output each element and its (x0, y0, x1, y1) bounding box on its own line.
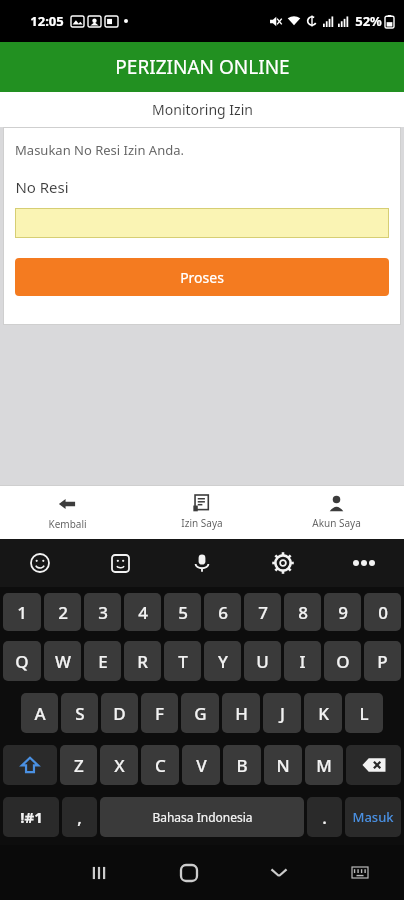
staticText: E (98, 650, 108, 673)
button[interactable]: Recents (54, 845, 144, 900)
staticText: C (155, 754, 166, 777)
button[interactable]: T (164, 641, 201, 681)
button[interactable]: N (264, 745, 302, 785)
button[interactable]: Voice input (161, 539, 242, 587)
button[interactable]: 2 (44, 593, 81, 631)
staticText: 3 (98, 601, 108, 624)
staticText: 4 (138, 601, 148, 624)
button[interactable]: H (222, 693, 260, 733)
staticText: 5 (178, 601, 188, 624)
staticText: H (235, 702, 248, 725)
button[interactable]: M (305, 745, 343, 785)
button[interactable]: R (124, 641, 161, 681)
button[interactable]: 9 (324, 593, 361, 631)
staticText: Q (15, 650, 29, 673)
button[interactable]: Bahasa Indonesia (100, 797, 304, 837)
staticText: S (75, 702, 85, 725)
staticText: L (359, 702, 369, 725)
staticText: U (256, 650, 269, 673)
button[interactable]: A (21, 693, 58, 733)
staticText: Kembali (48, 517, 87, 531)
staticText: Z (74, 754, 84, 777)
staticText: 1 (17, 601, 27, 624)
staticText: 12:05 (30, 12, 64, 30)
staticText: I (299, 650, 306, 673)
button[interactable]: B (223, 745, 261, 785)
button[interactable]: Proses (15, 258, 389, 296)
staticText: J (280, 702, 285, 725)
button[interactable]: !#1 (3, 797, 59, 837)
staticText: , (77, 806, 82, 829)
button[interactable]: More options (323, 539, 404, 587)
button[interactable]: 0 (364, 593, 401, 631)
button[interactable]: Hide keyboard (234, 845, 324, 900)
staticText: . (322, 806, 327, 829)
button[interactable]: 6 (204, 593, 241, 631)
staticText: N (276, 754, 290, 777)
staticText: K (318, 702, 329, 725)
staticText: Y (218, 650, 228, 673)
button[interactable]: V (182, 745, 220, 785)
button[interactable]: L (345, 693, 383, 733)
staticText: 6 (218, 601, 228, 624)
button[interactable]: O (324, 641, 361, 681)
staticText: Proses (180, 268, 224, 287)
button[interactable]: Q (3, 641, 41, 681)
button[interactable]: Z (60, 745, 97, 785)
button[interactable]: I (284, 641, 321, 681)
button[interactable]: Akun Saya (269, 486, 404, 539)
staticText: 9 (338, 601, 348, 624)
staticText: B (236, 754, 248, 777)
staticText: 7 (258, 601, 268, 624)
button[interactable]: Backspace (346, 745, 401, 785)
button[interactable]: Stickers (80, 539, 161, 587)
staticText: No Resi (15, 177, 69, 197)
button[interactable]: G (181, 693, 219, 733)
button[interactable]: Settings (242, 539, 323, 587)
staticText: D (113, 702, 126, 725)
staticText: W (55, 650, 71, 673)
button[interactable]: Kembali (0, 486, 134, 539)
button[interactable]: C (141, 745, 179, 785)
button[interactable]: E (84, 641, 121, 681)
button[interactable]: 8 (284, 593, 321, 631)
button[interactable]: 5 (164, 593, 201, 631)
staticText: 52% (355, 12, 382, 30)
button[interactable]: W (44, 641, 81, 681)
staticText: Masuk (352, 808, 394, 826)
staticText: 0 (378, 601, 388, 624)
button[interactable]: D (101, 693, 138, 733)
staticText: X (114, 754, 125, 777)
staticText: A (34, 702, 46, 725)
button[interactable] (15, 208, 389, 238)
button[interactable]: J (263, 693, 301, 733)
staticText: O (336, 650, 350, 673)
staticText: 8 (298, 601, 308, 624)
button[interactable]: Home (144, 845, 234, 900)
button[interactable]: U (244, 641, 281, 681)
button[interactable]: . (307, 797, 342, 837)
staticText: R (137, 650, 148, 673)
staticText: Bahasa Indonesia (152, 809, 253, 825)
button[interactable]: Y (204, 641, 241, 681)
staticText: G (194, 702, 207, 725)
button[interactable]: Shift (3, 745, 57, 785)
staticText: P (377, 650, 388, 673)
staticText: PERIZINAN ONLINE (115, 54, 290, 80)
button[interactable]: P (364, 641, 401, 681)
button[interactable]: Masuk (345, 797, 401, 837)
button[interactable]: F (141, 693, 178, 733)
button[interactable]: K (304, 693, 342, 733)
button[interactable]: 4 (124, 593, 161, 631)
button[interactable]: 3 (84, 593, 121, 631)
button[interactable]: Izin Saya (134, 486, 269, 539)
button[interactable]: 7 (244, 593, 281, 631)
button[interactable]: 1 (3, 593, 41, 631)
button[interactable]: Emoji (0, 539, 80, 587)
button[interactable]: Change keyboard (324, 845, 396, 900)
staticText: M (316, 754, 332, 777)
button[interactable]: X (100, 745, 138, 785)
staticText: 2 (58, 601, 68, 624)
button[interactable]: S (61, 693, 98, 733)
button[interactable]: , (62, 797, 97, 837)
